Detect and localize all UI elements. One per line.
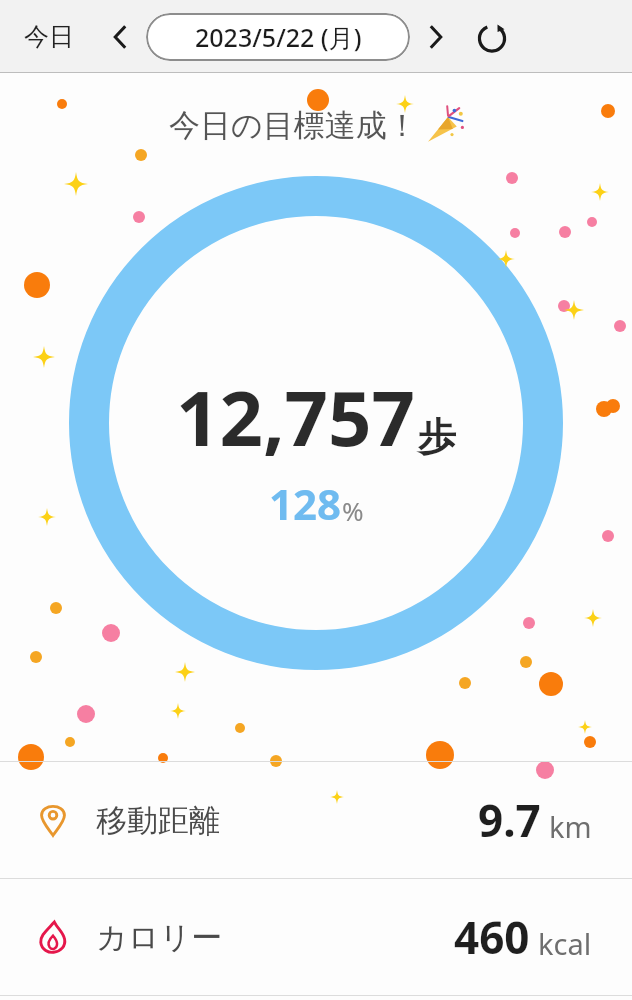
- staticText: カロリー: [96, 918, 223, 957]
- staticText: 2023/5/22 (月): [195, 20, 362, 54]
- staticText: 9.7: [478, 790, 541, 850]
- staticText: 460: [454, 907, 530, 967]
- staticText: km: [549, 807, 592, 846]
- staticText: %: [342, 493, 364, 528]
- button[interactable]: Next day: [414, 15, 458, 59]
- button[interactable]: 今日: [14, 15, 84, 58]
- staticText: 12,757: [176, 365, 416, 469]
- button[interactable]: 2023/5/22 (月): [146, 13, 410, 61]
- other: Distance: [36, 803, 70, 837]
- button[interactable]: Refresh: [468, 13, 516, 61]
- other: Calories: [36, 920, 70, 954]
- staticText: kcal: [538, 924, 592, 963]
- staticText: 128: [269, 475, 342, 532]
- staticText: 歩: [418, 413, 456, 461]
- staticText: 今日: [24, 21, 74, 52]
- staticText: 今日の目標達成！: [169, 106, 418, 145]
- staticText: 移動距離: [96, 801, 220, 840]
- button[interactable]: Calories: [0, 879, 632, 995]
- button[interactable]: Previous day: [98, 15, 142, 59]
- button[interactable]: Distance: [0, 762, 632, 878]
